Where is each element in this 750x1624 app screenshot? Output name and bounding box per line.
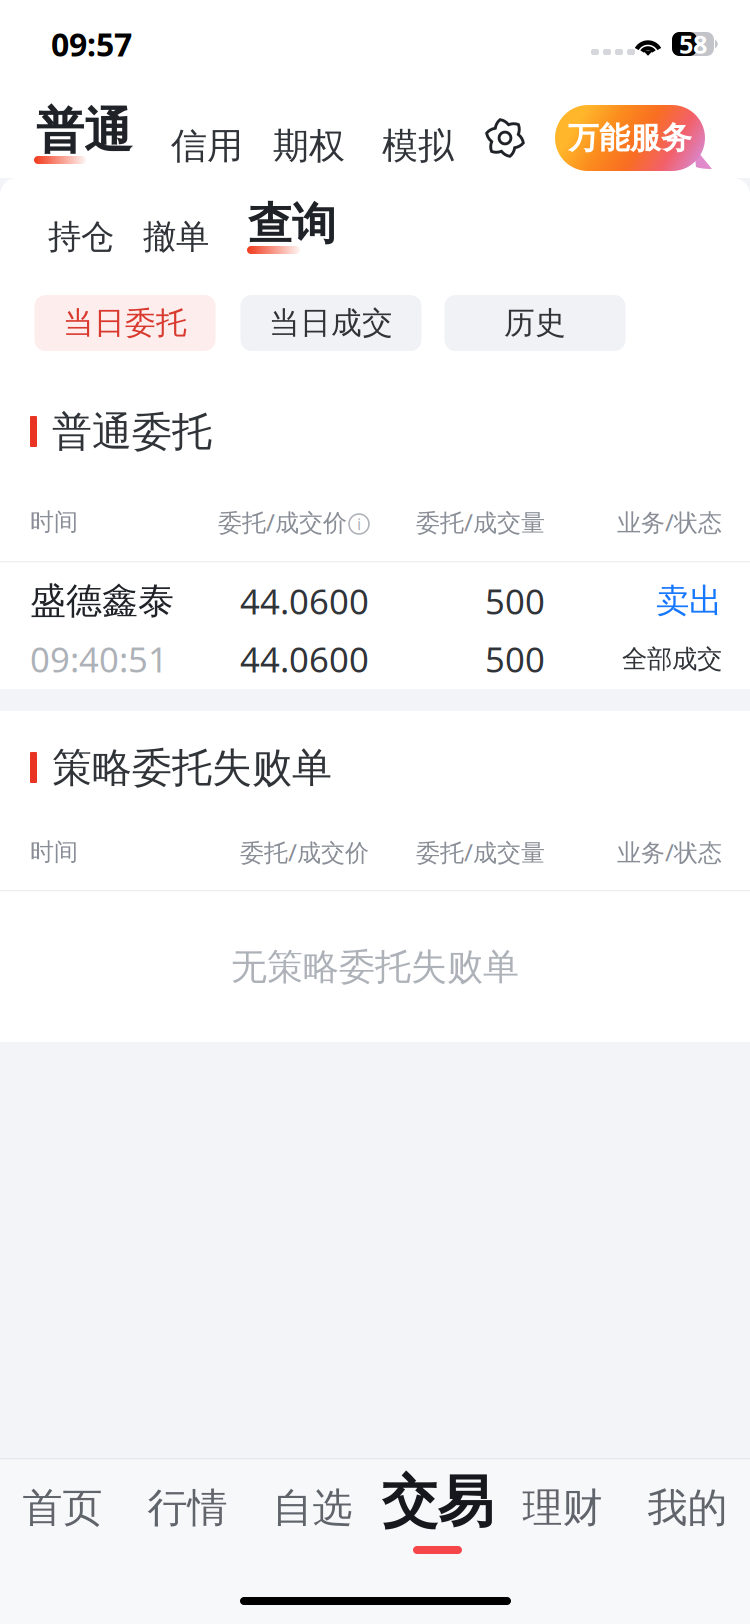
staticText: 委托/成交价 — [240, 836, 369, 868]
button[interactable]: 盛德鑫泰 — [0, 581, 750, 689]
staticText: 理财 — [522, 1483, 602, 1532]
staticText: 委托/成交量 — [416, 506, 545, 538]
staticText: 当日成交 — [269, 304, 393, 342]
button[interactable]: 当日委托 — [34, 295, 215, 351]
button[interactable]: 期权 — [272, 117, 346, 175]
staticText: 500 — [485, 578, 545, 624]
staticText: 44.0600 — [240, 636, 369, 682]
staticText: 万能服务 — [568, 119, 692, 157]
button[interactable]: 普通 — [34, 106, 134, 164]
button[interactable]: 当日成交 — [240, 295, 421, 351]
staticText: 卖出 — [656, 580, 722, 621]
staticText: 自选 — [272, 1483, 352, 1532]
button[interactable]: 首页 — [0, 1466, 125, 1562]
staticText: 时间 — [30, 837, 78, 867]
staticText: 信用 — [171, 124, 243, 168]
staticText: 历史 — [504, 304, 566, 342]
button[interactable]: 万能服务 — [555, 105, 713, 171]
staticText: 撤单 — [143, 216, 209, 257]
button[interactable]: 自选 — [250, 1466, 375, 1562]
staticText: 无策略委托失败单 — [231, 945, 519, 989]
staticText: 500 — [485, 636, 545, 682]
staticText: 普通委托 — [52, 407, 212, 456]
button[interactable]: 查询 — [245, 200, 339, 256]
staticText: 我的 — [647, 1483, 727, 1532]
staticText: 委托/成交量 — [416, 836, 545, 868]
staticText: 时间 — [30, 507, 78, 537]
staticText: 业务/状态 — [617, 836, 722, 868]
button[interactable]: 撤单 — [140, 214, 212, 260]
staticText: 44.0600 — [240, 578, 369, 624]
staticText: 交易 — [381, 1468, 493, 1536]
staticText: 业务/状态 — [617, 506, 722, 538]
button[interactable]: Settings — [485, 118, 525, 158]
staticText: 行情 — [147, 1483, 227, 1532]
button[interactable]: 交易 — [375, 1466, 500, 1562]
button[interactable]: 历史 — [444, 295, 625, 351]
button[interactable]: 模拟 — [381, 117, 455, 175]
staticText: 首页 — [22, 1483, 102, 1532]
staticText: 策略委托失败单 — [52, 743, 332, 792]
staticText: 模拟 — [382, 124, 454, 168]
button[interactable]: 信用 — [170, 117, 244, 175]
staticText: 当日委托 — [63, 304, 187, 342]
button[interactable]: 持仓 — [46, 214, 116, 260]
staticText: 期权 — [273, 124, 345, 168]
staticText: 全部成交 — [622, 643, 722, 674]
button[interactable]: 我的 — [625, 1466, 750, 1562]
staticText: 盛德鑫泰 — [30, 579, 174, 623]
staticText: 查询 — [248, 197, 336, 251]
staticText: 普通 — [36, 101, 132, 160]
staticText: i — [357, 513, 361, 535]
staticText: 持仓 — [48, 216, 114, 257]
staticText: 58 — [679, 27, 707, 61]
button[interactable]: 理财 — [500, 1466, 625, 1562]
staticText: 委托/成交价 — [218, 506, 347, 538]
staticText: 09:40:51 — [30, 636, 168, 682]
button[interactable]: 行情 — [125, 1466, 250, 1562]
staticText: 09:57 — [51, 23, 132, 65]
